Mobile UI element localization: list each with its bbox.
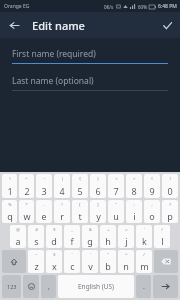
staticText: 123 (7, 283, 17, 290)
button[interactable]: ^ (19, 174, 34, 198)
staticText: w (23, 210, 31, 222)
button[interactable]: | (54, 174, 70, 198)
staticText: 1 (7, 185, 13, 197)
staticText: _ (71, 227, 73, 232)
staticText: Orange EG (4, 3, 30, 10)
button[interactable]: ( (144, 174, 160, 198)
staticText: ] (97, 202, 99, 207)
staticText: t (78, 210, 82, 222)
staticText: 2 (24, 185, 30, 197)
staticText: 7 (113, 185, 119, 197)
staticText: | (61, 176, 64, 181)
staticText: u (113, 210, 119, 222)
button[interactable]: % (2, 200, 17, 223)
staticText: " (115, 202, 117, 207)
staticText: } (97, 176, 99, 181)
button[interactable]: Back (5, 16, 23, 34)
staticText: e (41, 210, 47, 222)
staticText: 0K/s (104, 4, 114, 10)
staticText: @ (16, 227, 20, 232)
button[interactable]: " (100, 250, 116, 273)
button[interactable]: Backspace (154, 250, 178, 273)
staticText: 9 (149, 185, 155, 197)
staticText: s (34, 235, 39, 247)
button[interactable]: First name (required) (12, 46, 168, 64)
button[interactable]: Space (58, 275, 134, 298)
button[interactable]: / (154, 225, 170, 248)
staticText: 8 (131, 185, 137, 197)
staticText: 5 (77, 185, 83, 197)
staticText: v (88, 260, 93, 272)
button[interactable]: & (82, 225, 98, 248)
staticText: b (105, 260, 111, 272)
staticText: - (43, 202, 45, 207)
staticText: 0 (167, 185, 173, 197)
staticText: : (133, 202, 135, 207)
staticText: 6:48 PM (158, 3, 177, 10)
staticText: ? (169, 202, 171, 207)
staticText: Last name (optional) (12, 75, 94, 87)
button[interactable]: , (41, 275, 56, 298)
staticText: ' (144, 227, 145, 232)
button[interactable]: Enter (153, 275, 178, 298)
staticText: h (105, 235, 111, 247)
staticText: Edit name (32, 18, 85, 33)
button[interactable]: @ (10, 225, 26, 248)
staticText: x (52, 260, 57, 272)
button[interactable]: - (36, 200, 52, 223)
button[interactable]: ' (136, 225, 152, 248)
button[interactable]: ! (54, 200, 70, 223)
staticText: n (123, 260, 129, 272)
button[interactable]: Shift (2, 250, 26, 273)
staticText: o (149, 210, 155, 222)
staticText: English (US) (78, 282, 115, 291)
staticText: { (79, 176, 81, 181)
staticText: > (133, 176, 136, 181)
button[interactable]: : (126, 200, 142, 223)
button[interactable]: ` (64, 250, 80, 273)
button[interactable]: { (72, 174, 88, 198)
button[interactable]: $ (46, 250, 62, 273)
button[interactable]: ~ (36, 174, 52, 198)
button[interactable]: Last name (optional) (12, 73, 168, 91)
button[interactable]: ' (82, 250, 98, 273)
button[interactable]: = (118, 225, 134, 248)
staticText: $ (53, 227, 56, 232)
staticText: + (107, 227, 110, 232)
button[interactable]: * (19, 200, 34, 223)
staticText: ' (90, 252, 91, 257)
staticText: " (107, 252, 109, 257)
staticText: ; (151, 202, 153, 207)
staticText: & (89, 227, 92, 232)
staticText: # (35, 227, 38, 232)
button[interactable]: ] (90, 200, 106, 223)
button[interactable]: _ (64, 225, 80, 248)
button[interactable]: \ (2, 174, 17, 198)
staticText: First name (required) (12, 48, 96, 60)
button[interactable]: ; (144, 200, 160, 223)
staticText: r (60, 210, 64, 222)
button[interactable]: < (108, 174, 124, 198)
button[interactable]: ) (162, 174, 178, 198)
staticText: [ (79, 202, 81, 207)
button[interactable]: ? (162, 200, 178, 223)
button[interactable]: $ (46, 225, 62, 248)
button[interactable]: " (108, 200, 124, 223)
button[interactable]: ^ (118, 250, 134, 273)
button[interactable]: + (100, 225, 116, 248)
button[interactable]: ~ (28, 250, 44, 273)
button[interactable]: } (90, 174, 106, 198)
staticText: < (115, 176, 118, 181)
button[interactable]: [ (72, 200, 88, 223)
button[interactable]: Symbols (2, 275, 21, 298)
button[interactable]: > (126, 174, 142, 198)
staticText: ` (71, 252, 73, 257)
button[interactable]: Emoji (23, 275, 39, 298)
staticText: m (140, 260, 149, 272)
staticText: 60% (138, 4, 147, 10)
staticText: ~ (35, 252, 38, 257)
button[interactable]: Save (158, 16, 176, 34)
button[interactable]: / (136, 250, 152, 273)
button[interactable]: # (28, 225, 44, 248)
